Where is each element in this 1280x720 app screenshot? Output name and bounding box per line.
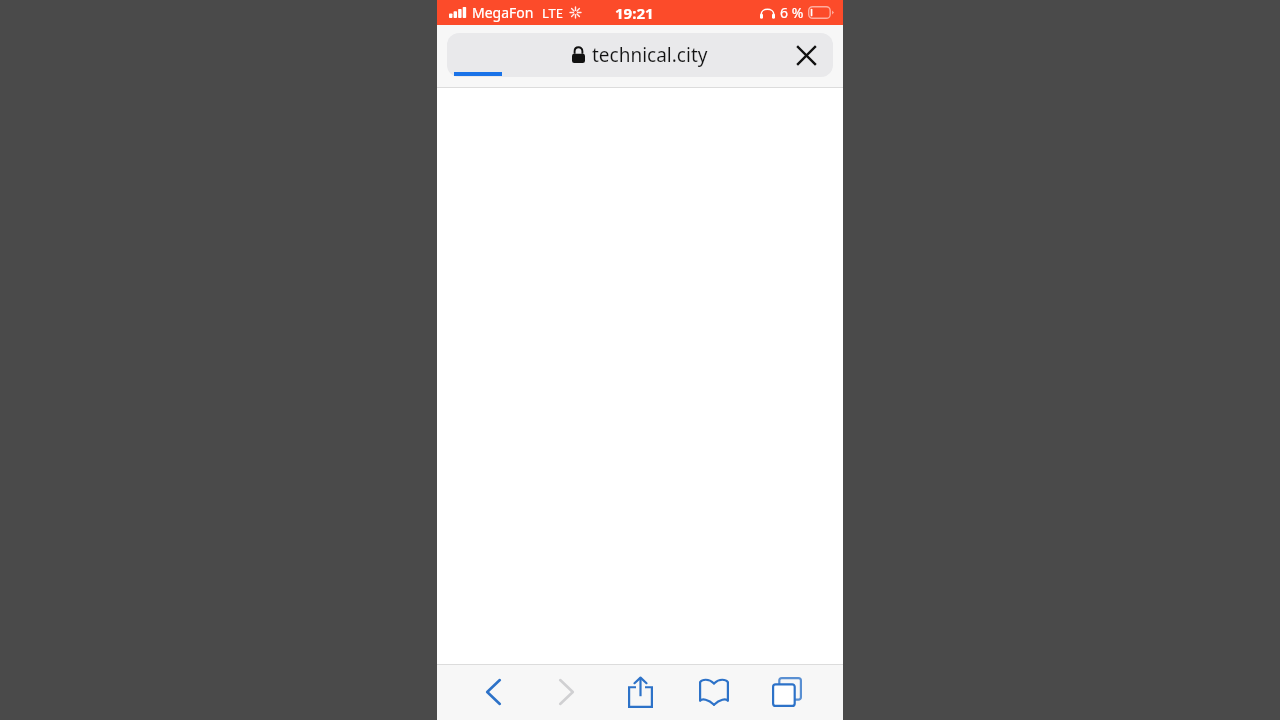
- staticText: 6 %: [780, 3, 804, 22]
- button[interactable]: Share: [614, 666, 666, 718]
- staticText: 19:21: [615, 3, 654, 23]
- button[interactable]: Tabs: [761, 666, 813, 718]
- staticText: technical.city: [592, 42, 708, 68]
- button[interactable]: Stop loading: [787, 36, 825, 74]
- button[interactable]: technical.city: [447, 33, 833, 77]
- button[interactable]: Back: [467, 666, 519, 718]
- button[interactable]: Forward: [540, 666, 592, 718]
- staticText: LTE: [542, 4, 564, 22]
- staticText: MegaFon: [472, 3, 534, 22]
- button[interactable]: Bookmarks: [688, 666, 740, 718]
